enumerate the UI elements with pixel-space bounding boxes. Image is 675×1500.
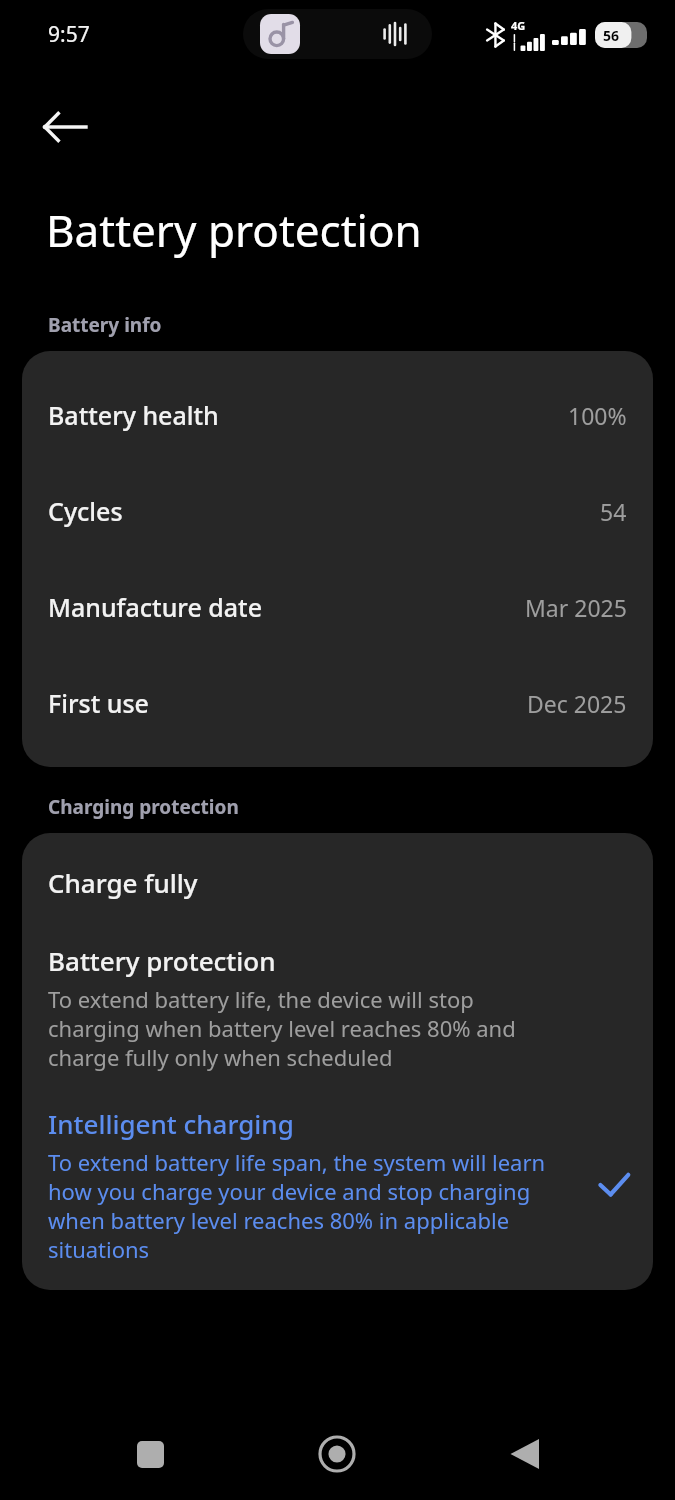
button[interactable]: Charge fully [22, 833, 653, 931]
staticText: Battery info [48, 312, 162, 338]
staticText: Charging protection [48, 794, 239, 820]
staticText: 56 [603, 26, 620, 45]
staticText: To extend battery life, the device will … [48, 984, 561, 1072]
staticText: Charge fully [48, 865, 198, 900]
button[interactable]: Recents [114, 1418, 186, 1490]
staticText: 4G [511, 18, 526, 33]
staticText: Battery protection [48, 943, 276, 978]
staticText: Battery protection [46, 200, 422, 260]
button[interactable]: Manufacture date [22, 559, 653, 655]
button[interactable]: Back [488, 1418, 560, 1490]
staticText: 54 [600, 496, 627, 527]
staticText: Cycles [48, 494, 123, 528]
button[interactable]: Cycles [22, 463, 653, 559]
staticText: Manufacture date [48, 590, 263, 624]
staticText: First use [48, 686, 149, 720]
staticText: Mar 2025 [525, 592, 627, 623]
staticText: 9:57 [48, 20, 90, 49]
staticText: Dec 2025 [527, 688, 627, 719]
staticText: Intelligent charging [48, 1106, 294, 1141]
button[interactable]: Intelligent charging [22, 1092, 653, 1290]
staticText: To extend battery life span, the system … [48, 1147, 583, 1264]
button[interactable]: Battery protection [22, 931, 653, 1092]
button[interactable]: Back [34, 96, 96, 158]
button[interactable]: First use [22, 655, 653, 751]
button[interactable]: Battery health [22, 367, 653, 463]
button[interactable]: Home [301, 1418, 373, 1490]
staticText: 100% [568, 400, 627, 431]
staticText: Battery health [48, 398, 219, 432]
